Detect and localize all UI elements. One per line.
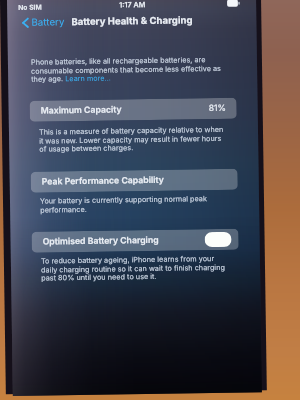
staticText: This is a measure of battery capacity re… (39, 125, 228, 153)
staticText: Peak Performance Capability (42, 175, 165, 188)
staticText: Your battery is currently supporting nor… (40, 194, 229, 214)
staticText: To reduce battery ageing, iPhone learns … (41, 254, 230, 282)
button[interactable]: Optimised Battery Charging (204, 232, 232, 247)
staticText: 81% (209, 103, 227, 114)
staticText: 1:17 AM (119, 0, 146, 9)
button[interactable]: Optimised Battery Charging (31, 229, 239, 253)
other: Battery (227, 0, 240, 7)
button[interactable]: Maximum Capacity (29, 98, 237, 122)
button[interactable]: Peak Performance Capability (31, 169, 238, 193)
staticText: Battery Health & Charging (71, 14, 193, 28)
button[interactable]: Battery (7, 16, 68, 29)
staticText: Battery (31, 16, 65, 29)
staticText: No SIM (18, 3, 42, 11)
button[interactable]: Phone batteries, like all rechargeable b… (31, 55, 230, 83)
staticText: Maximum Capacity (41, 104, 122, 117)
staticText: Optimised Battery Charging (42, 235, 159, 248)
